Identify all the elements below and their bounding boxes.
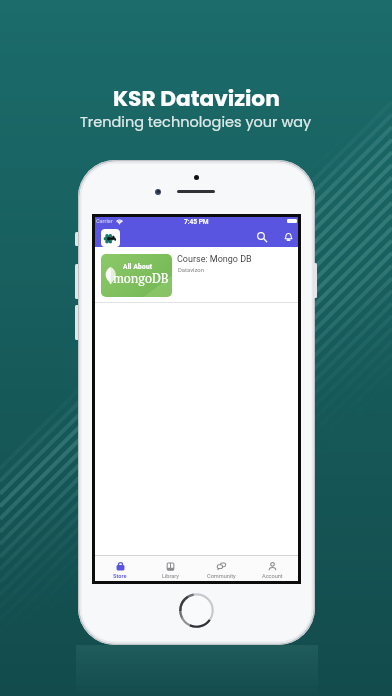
button[interactable]: Datavizion logo bbox=[101, 229, 120, 247]
staticText: Store bbox=[113, 573, 127, 580]
staticText: Carrier bbox=[96, 218, 113, 224]
staticText: Course: Mongo DB bbox=[177, 254, 252, 265]
staticText: Community bbox=[207, 573, 236, 580]
button[interactable]: Notifications bbox=[276, 226, 300, 247]
staticText: Library bbox=[162, 573, 179, 580]
button[interactable]: Library bbox=[145, 556, 196, 581]
button[interactable]: Store bbox=[95, 556, 145, 581]
staticText: Account bbox=[262, 573, 283, 580]
button[interactable]: Search bbox=[250, 226, 274, 247]
staticText: Trending technologies your way bbox=[80, 112, 312, 132]
button[interactable]: Home bbox=[179, 593, 214, 628]
staticText: Datavizon bbox=[178, 267, 204, 274]
staticText: KSR Datavizion bbox=[113, 83, 280, 113]
staticText: mongoDB bbox=[113, 270, 171, 287]
button[interactable]: Community bbox=[196, 556, 247, 581]
button[interactable]: Course: Mongo DB bbox=[101, 254, 172, 297]
button[interactable]: Account bbox=[247, 556, 298, 581]
staticText: All About bbox=[123, 263, 167, 271]
staticText: 7:45 PM bbox=[184, 218, 209, 226]
